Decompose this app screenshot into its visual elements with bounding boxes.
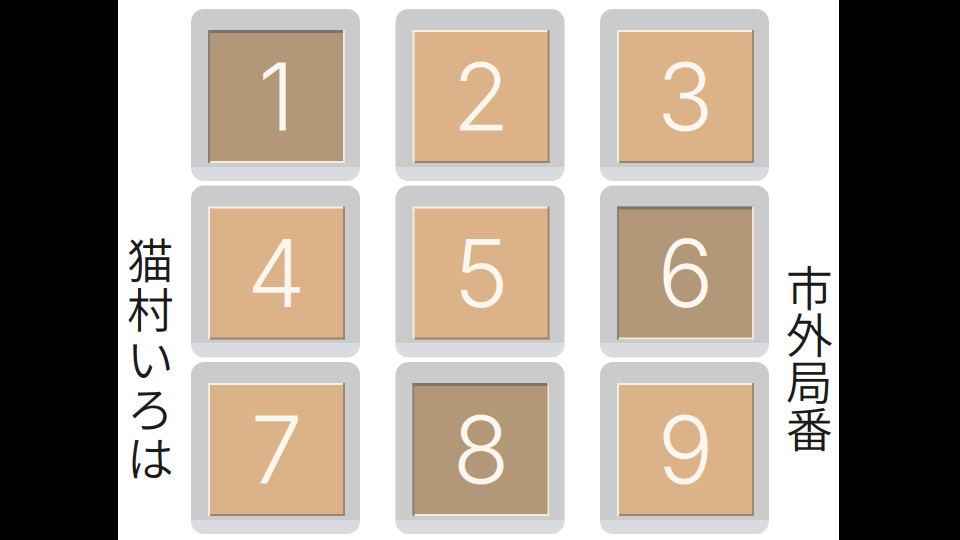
staticText: は <box>127 422 174 490</box>
staticText: 1 <box>258 40 295 153</box>
button[interactable]: 2 <box>395 9 564 181</box>
staticText: 市 <box>786 252 833 319</box>
staticText: 6 <box>657 216 713 329</box>
staticText: 局 <box>786 346 833 413</box>
staticText: 村 <box>127 273 174 341</box>
button[interactable]: 8 <box>395 362 564 534</box>
staticText: 3 <box>657 40 714 153</box>
staticText: 4 <box>247 216 306 329</box>
staticText: 外 <box>786 299 833 366</box>
staticText: 猫 <box>127 224 174 292</box>
staticText: 5 <box>453 216 508 329</box>
button[interactable]: 4 <box>191 185 360 357</box>
button[interactable]: 9 <box>600 362 769 534</box>
staticText: 2 <box>452 40 509 153</box>
staticText: 7 <box>250 393 302 506</box>
button[interactable]: 3 <box>600 9 769 181</box>
staticText: い <box>127 323 174 391</box>
staticText: 番 <box>786 393 833 460</box>
staticText: 8 <box>452 393 509 506</box>
button[interactable]: 1 <box>191 9 360 181</box>
button[interactable]: 6 <box>600 185 769 357</box>
staticText: 9 <box>657 393 713 506</box>
button[interactable]: 5 <box>395 185 564 357</box>
button[interactable]: 7 <box>191 362 360 534</box>
staticText: ろ <box>127 372 174 440</box>
